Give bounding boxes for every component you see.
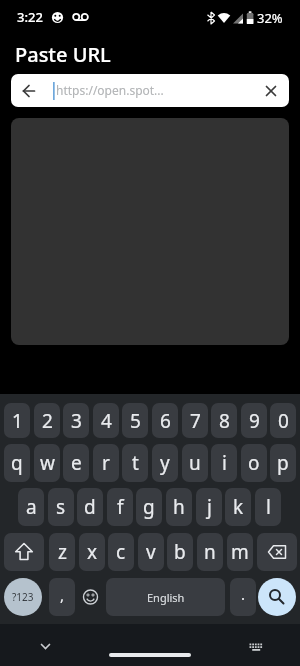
button[interactable]: b: [167, 533, 193, 571]
staticText: 0: [278, 408, 289, 434]
button[interactable]: ?123: [4, 578, 42, 616]
staticText: l: [266, 494, 271, 520]
staticText: x: [87, 539, 98, 565]
staticText: 1: [12, 408, 23, 434]
staticText: z: [58, 539, 67, 565]
button[interactable]: d: [77, 488, 103, 526]
staticText: 2: [42, 408, 53, 434]
button[interactable]: v: [138, 533, 164, 571]
button[interactable]: y: [152, 444, 178, 482]
button[interactable]: [257, 533, 297, 571]
staticText: f: [117, 494, 124, 520]
staticText: k: [233, 494, 244, 520]
button[interactable]: English: [106, 578, 225, 616]
button[interactable]: 3: [63, 403, 89, 438]
button[interactable]: a: [18, 488, 44, 526]
button[interactable]: x: [79, 533, 105, 571]
button[interactable]: c: [108, 533, 134, 571]
staticText: .: [241, 584, 246, 604]
button[interactable]: ,: [49, 578, 75, 616]
button[interactable]: [4, 533, 44, 571]
staticText: ,: [60, 585, 65, 605]
button[interactable]: h: [166, 488, 192, 526]
staticText: ?123: [12, 590, 34, 604]
button[interactable]: t: [122, 444, 148, 482]
staticText: c: [116, 539, 126, 565]
staticText: n: [204, 539, 216, 565]
staticText: u: [189, 450, 201, 476]
staticText: r: [102, 450, 110, 476]
button[interactable]: z: [49, 533, 75, 571]
staticText: 3:22: [17, 8, 43, 26]
staticText: 4: [101, 408, 112, 434]
button[interactable]: [109, 653, 191, 657]
button[interactable]: https://open.spot...: [11, 74, 289, 107]
button[interactable]: p: [270, 444, 296, 482]
button[interactable]: w: [34, 444, 60, 482]
button[interactable]: 8: [211, 403, 237, 438]
button[interactable]: q: [4, 444, 30, 482]
staticText: j: [207, 494, 212, 520]
staticText: 6: [160, 408, 171, 434]
staticText: o: [248, 450, 260, 476]
button[interactable]: k: [225, 488, 251, 526]
staticText: 32%: [257, 9, 283, 27]
staticText: 7: [190, 408, 201, 434]
staticText: d: [84, 494, 96, 520]
button[interactable]: i: [211, 444, 237, 482]
staticText: s: [56, 494, 66, 520]
button[interactable]: 9: [241, 403, 267, 438]
staticText: 5: [130, 408, 141, 434]
staticText: https://open.spot...: [56, 82, 164, 98]
button[interactable]: 2: [34, 403, 60, 438]
staticText: Paste URL: [15, 41, 111, 68]
staticText: a: [26, 494, 37, 520]
staticText: v: [146, 539, 156, 565]
staticText: p: [277, 450, 289, 476]
staticText: English: [147, 590, 185, 605]
button[interactable]: 5: [122, 403, 148, 438]
button[interactable]: l: [255, 488, 281, 526]
staticText: 8: [219, 408, 230, 434]
staticText: m: [231, 539, 249, 565]
button[interactable]: [258, 578, 296, 616]
staticText: h: [173, 494, 185, 520]
staticText: g: [143, 494, 155, 520]
button[interactable]: 6: [152, 403, 178, 438]
staticText: 3: [71, 408, 82, 434]
button[interactable]: g: [136, 488, 162, 526]
button[interactable]: s: [48, 488, 74, 526]
button[interactable]: o: [241, 444, 267, 482]
staticText: y: [160, 450, 170, 476]
staticText: t: [132, 450, 139, 476]
button[interactable]: [35, 636, 56, 657]
button[interactable]: 4: [93, 403, 119, 438]
button[interactable]: u: [182, 444, 208, 482]
button[interactable]: 7: [182, 403, 208, 438]
button[interactable]: 0: [270, 403, 296, 438]
button[interactable]: [79, 578, 102, 616]
staticText: i: [222, 450, 227, 476]
staticText: e: [71, 450, 82, 476]
button[interactable]: m: [227, 533, 253, 571]
staticText: q: [11, 450, 23, 476]
staticText: b: [174, 539, 186, 565]
button[interactable]: j: [196, 488, 222, 526]
button[interactable]: n: [197, 533, 223, 571]
button[interactable]: e: [63, 444, 89, 482]
staticText: w: [40, 450, 55, 476]
staticText: 9: [249, 408, 260, 434]
button[interactable]: r: [93, 444, 119, 482]
button[interactable]: [246, 638, 266, 658]
button[interactable]: .: [230, 578, 256, 616]
button[interactable]: f: [107, 488, 133, 526]
button[interactable]: 1: [4, 403, 30, 438]
